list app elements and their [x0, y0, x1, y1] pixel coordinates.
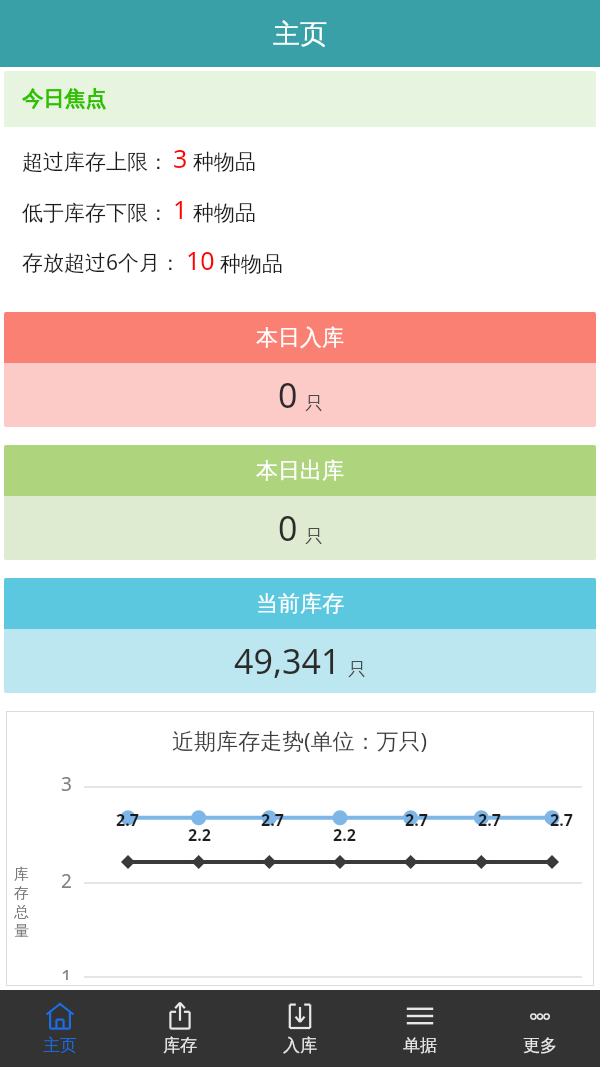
- staticText: 3: [173, 141, 188, 175]
- staticText: 总: [14, 903, 29, 922]
- staticText: 当前库存: [256, 590, 344, 618]
- staticText: 单据: [403, 1035, 437, 1056]
- button[interactable]: 本日出库: [4, 445, 596, 560]
- staticText: 2: [61, 868, 72, 894]
- staticText: 库存: [163, 1035, 197, 1056]
- staticText: 更多: [523, 1035, 557, 1056]
- staticText: 种物品: [193, 200, 256, 226]
- staticText: 主页: [43, 1035, 77, 1056]
- staticText: 本日出库: [256, 457, 344, 485]
- staticText: 库: [14, 865, 29, 884]
- staticText: 主页: [273, 17, 327, 51]
- staticText: 1: [173, 192, 188, 226]
- staticText: 量: [14, 922, 29, 941]
- staticText: 只: [305, 392, 323, 415]
- staticText: 2.7: [478, 809, 501, 831]
- staticText: 低于库存下限：: [22, 200, 169, 226]
- staticText: 超过库存上限：: [22, 149, 169, 175]
- staticText: 近期库存走势(单位：万只): [172, 725, 428, 755]
- staticText: 2.7: [261, 809, 284, 831]
- staticText: 3: [61, 771, 72, 797]
- button[interactable]: 库存: [120, 990, 240, 1067]
- button[interactable]: 当前库存: [4, 578, 596, 693]
- button[interactable]: 近期库存走势(单位：万只): [6, 711, 594, 986]
- staticText: 种物品: [193, 149, 256, 175]
- staticText: 1: [61, 964, 72, 980]
- staticText: 10: [186, 243, 215, 277]
- staticText: 种物品: [220, 251, 283, 277]
- button[interactable]: 主页: [0, 990, 120, 1067]
- staticText: 本日入库: [256, 324, 344, 352]
- button[interactable]: 本日入库: [4, 312, 596, 427]
- staticText: 0: [278, 505, 298, 551]
- button[interactable]: 更多: [480, 990, 600, 1067]
- staticText: 49,341: [234, 638, 341, 684]
- staticText: 存: [14, 884, 29, 903]
- staticText: 2.2: [188, 824, 211, 846]
- button[interactable]: 单据: [360, 990, 480, 1067]
- staticText: 入库: [283, 1035, 317, 1056]
- staticText: 0: [278, 372, 298, 418]
- staticText: 2.7: [405, 809, 428, 831]
- button[interactable]: 入库: [240, 990, 360, 1067]
- staticText: 存放超过6个月：: [22, 248, 182, 277]
- staticText: 2.2: [333, 824, 356, 846]
- staticText: 2.7: [116, 809, 139, 831]
- staticText: 只: [305, 525, 323, 548]
- staticText: 只: [348, 658, 366, 681]
- staticText: 今日焦点: [22, 86, 106, 112]
- staticText: 2.7: [550, 809, 573, 831]
- button[interactable]: 今日焦点: [4, 71, 596, 295]
